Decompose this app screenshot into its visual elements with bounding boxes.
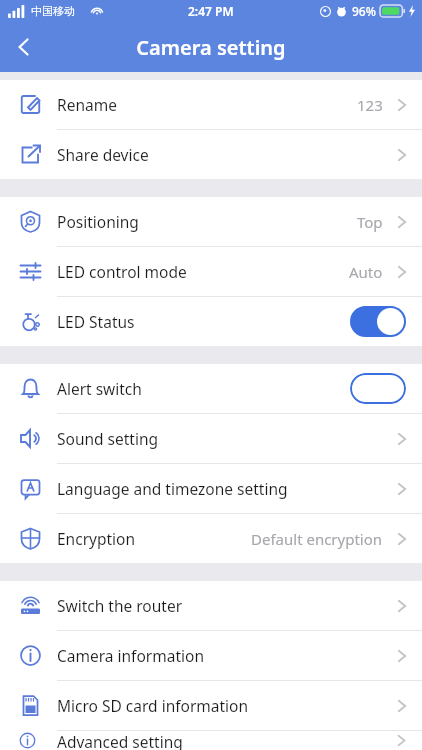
button[interactable]: Back bbox=[0, 23, 48, 71]
staticText: Camera information bbox=[57, 645, 204, 666]
staticText: LED control mode bbox=[57, 261, 187, 282]
staticText: Positioning bbox=[57, 211, 139, 232]
button[interactable]: Camera information bbox=[0, 631, 422, 681]
staticText: Alert switch bbox=[57, 378, 142, 399]
button[interactable]: Alert switch bbox=[0, 364, 422, 414]
staticText: Share device bbox=[57, 144, 149, 165]
button[interactable]: Share device bbox=[0, 130, 422, 179]
button[interactable]: Sound setting bbox=[0, 414, 422, 464]
staticText: Auto bbox=[349, 262, 383, 282]
staticText: LED Status bbox=[57, 311, 135, 332]
staticText: Language and timezone setting bbox=[57, 478, 288, 499]
button[interactable]: Toggle off bbox=[350, 373, 406, 404]
staticText: Micro SD card information bbox=[57, 695, 249, 716]
staticText: Advanced setting bbox=[57, 731, 183, 750]
staticText: Encryption bbox=[57, 528, 136, 549]
button[interactable]: Positioning bbox=[0, 197, 422, 247]
staticText: Default encryption bbox=[251, 529, 383, 549]
button[interactable]: Toggle on bbox=[350, 306, 406, 337]
staticText: Sound setting bbox=[57, 428, 159, 449]
button[interactable]: Rename bbox=[0, 80, 422, 130]
button[interactable]: Language and timezone setting bbox=[0, 464, 422, 514]
staticText: 中国移动 bbox=[31, 4, 75, 18]
button[interactable]: LED Status bbox=[0, 297, 422, 346]
button[interactable]: Encryption bbox=[0, 514, 422, 563]
button[interactable]: Switch the router bbox=[0, 581, 422, 631]
staticText: Top bbox=[357, 212, 383, 232]
button[interactable]: Advanced setting bbox=[0, 731, 422, 750]
button[interactable]: LED control mode bbox=[0, 247, 422, 297]
staticText: Camera setting bbox=[0, 34, 422, 61]
staticText: Rename bbox=[57, 94, 117, 115]
staticText: 96% bbox=[352, 3, 376, 19]
staticText: 2:47 PM bbox=[188, 3, 234, 19]
button[interactable]: Micro SD card information bbox=[0, 681, 422, 731]
staticText: 123 bbox=[357, 95, 383, 115]
staticText: Switch the router bbox=[57, 595, 183, 616]
